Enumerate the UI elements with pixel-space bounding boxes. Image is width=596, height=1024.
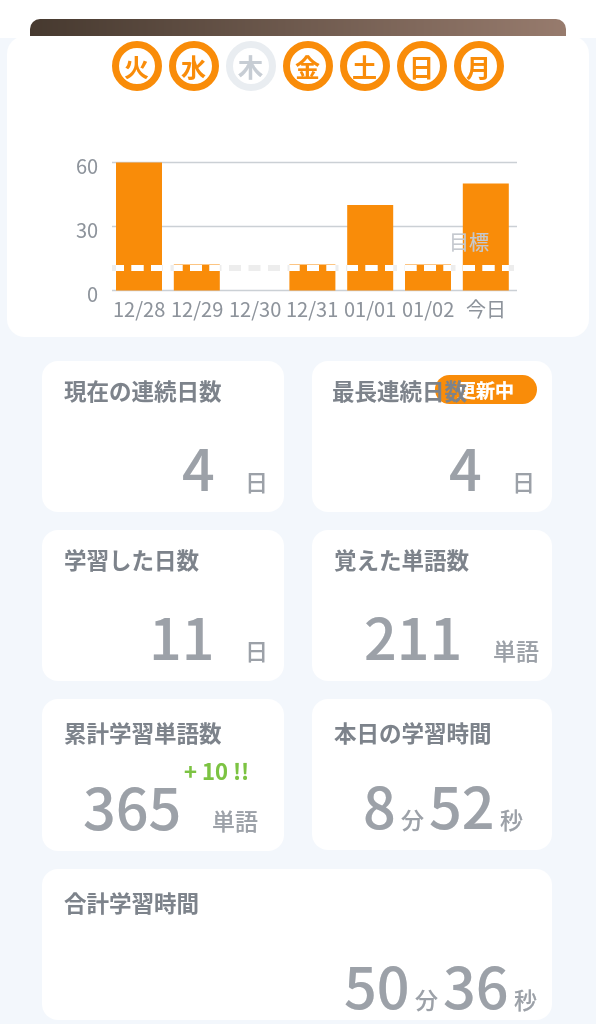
staticText: 12/28 — [113, 294, 166, 322]
staticText: 8 — [363, 762, 396, 845]
staticText: 現在の連続日数 — [64, 374, 222, 407]
staticText: 11 — [149, 593, 215, 676]
staticText: 4 — [182, 424, 215, 507]
button[interactable]: 月 — [454, 41, 504, 91]
button[interactable]: 現在の連続日数 — [42, 361, 284, 512]
staticText: 211 — [364, 593, 463, 676]
staticText: 秒 — [500, 802, 523, 835]
staticText: 金 — [295, 48, 321, 84]
staticText: 52 — [429, 762, 495, 845]
staticText: 合計学習時間 — [64, 886, 200, 919]
staticText: 30 — [76, 215, 99, 244]
staticText: 36 — [443, 942, 509, 1020]
staticText: 月 — [466, 48, 492, 84]
staticText: 分 — [401, 802, 424, 835]
staticText: 日 — [512, 464, 535, 497]
staticText: 日 — [245, 633, 268, 666]
button[interactable]: 日 — [397, 41, 447, 91]
staticText: 秒 — [514, 982, 537, 1015]
button[interactable]: 木 — [226, 41, 276, 91]
button[interactable]: 水 — [169, 41, 219, 91]
staticText: 12/31 — [286, 294, 339, 322]
staticText: 50 — [344, 942, 410, 1020]
staticText: 01/02 — [402, 294, 455, 322]
button[interactable]: 学習した日数 — [42, 530, 284, 681]
staticText: 学習した日数 — [64, 543, 200, 576]
staticText: 分 — [415, 982, 438, 1015]
staticText: 今日 — [466, 294, 506, 322]
button[interactable]: 累計学習単語数 — [42, 699, 284, 851]
staticText: 水 — [181, 48, 207, 84]
button[interactable]: 火 — [112, 41, 162, 91]
button[interactable]: 更新中 — [312, 361, 552, 512]
staticText: 単語 — [493, 633, 539, 666]
staticText: 60 — [76, 151, 99, 180]
staticText: 土 — [352, 48, 378, 84]
staticText: 更新中 — [457, 376, 515, 404]
staticText: 累計学習単語数 — [64, 716, 222, 749]
staticText: 単語 — [212, 803, 258, 836]
staticText: 4 — [449, 424, 482, 507]
staticText: 本日の学習時間 — [334, 716, 492, 749]
button[interactable]: 覚えた単語数 — [312, 530, 552, 681]
button[interactable]: 本日の学習時間 — [312, 699, 552, 850]
staticText: + 10 !! — [184, 754, 250, 786]
staticText: 最長連続日数 — [332, 374, 468, 407]
staticText: 日 — [245, 464, 268, 497]
button[interactable]: 土 — [340, 41, 390, 91]
staticText: 日 — [409, 48, 435, 84]
button[interactable]: 金 — [283, 41, 333, 91]
staticText: 0 — [87, 279, 99, 308]
staticText: 365 — [83, 763, 182, 846]
staticText: 12/30 — [229, 294, 282, 322]
staticText: 12/29 — [171, 294, 224, 322]
staticText: 覚えた単語数 — [334, 543, 470, 576]
staticText: 木 — [238, 48, 264, 84]
button[interactable]: 合計学習時間 — [42, 869, 552, 1020]
staticText: 目標 — [449, 227, 489, 256]
staticText: 火 — [124, 48, 150, 84]
staticText: 01/01 — [344, 294, 397, 322]
